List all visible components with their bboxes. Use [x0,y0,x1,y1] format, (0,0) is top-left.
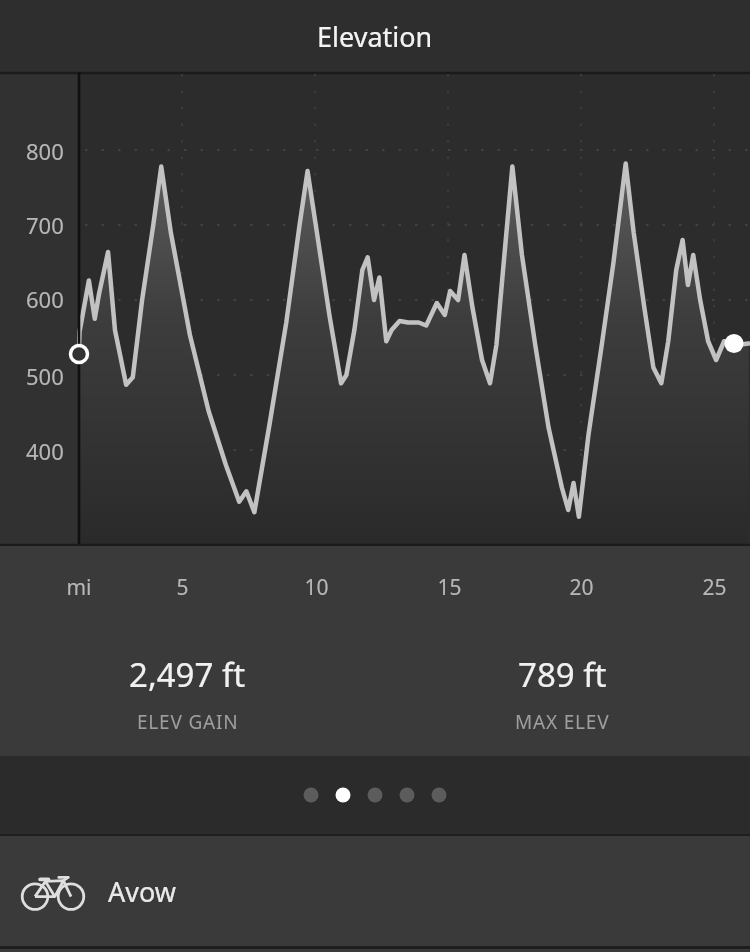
staticText: 700 [26,210,64,240]
staticText: 2,497 ft [129,652,246,697]
staticText: 500 [26,361,64,391]
button[interactable]: Cycling activity [0,836,750,946]
other: Cycling activity [24,871,82,911]
staticText: Elevation [317,18,433,55]
staticText: Avow [108,873,176,910]
staticText: 600 [26,284,64,314]
staticText: 15 [437,573,462,602]
staticText: ELEV GAIN [137,709,239,735]
staticText: 400 [26,436,64,466]
staticText: 25 [702,573,727,602]
staticText: MAX ELEV [515,709,610,735]
staticText: 10 [304,573,329,602]
button[interactable]: 2,497 ft [0,626,375,756]
button[interactable]: Page 2 of 5 [0,756,750,834]
staticText: 800 [26,136,64,166]
staticText: 20 [569,573,594,602]
staticText: 5 [176,573,189,602]
staticText: mi [66,573,92,602]
button[interactable]: 789 ft [375,626,750,756]
staticText: 789 ft [518,652,607,697]
